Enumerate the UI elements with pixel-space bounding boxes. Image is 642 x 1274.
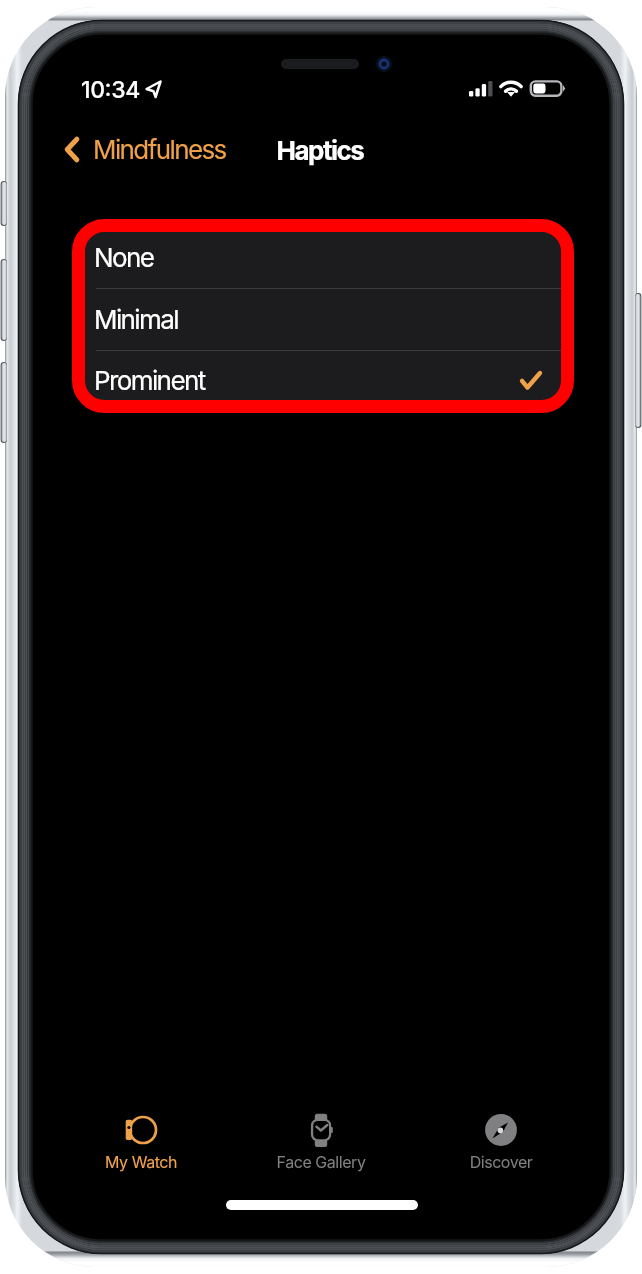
staticText: Prominent bbox=[94, 365, 205, 396]
staticText: My Watch bbox=[81, 1152, 201, 1171]
button[interactable]: Prominent bbox=[79, 351, 566, 410]
button[interactable]: My Watch bbox=[81, 1103, 201, 1171]
staticText: Mindfulness bbox=[93, 134, 226, 165]
button[interactable]: Minimal bbox=[79, 289, 566, 350]
staticText: Haptics bbox=[33, 135, 608, 166]
staticText: None bbox=[94, 242, 154, 273]
staticText: 10:34 bbox=[81, 76, 140, 104]
staticText: Discover bbox=[441, 1152, 561, 1171]
staticText: Minimal bbox=[94, 304, 178, 335]
button[interactable]: Face Gallery bbox=[261, 1103, 381, 1171]
button[interactable]: Mindfulness bbox=[55, 128, 238, 172]
button[interactable]: None bbox=[79, 227, 566, 288]
staticText: Face Gallery bbox=[261, 1152, 381, 1171]
button[interactable]: Discover bbox=[441, 1103, 561, 1171]
